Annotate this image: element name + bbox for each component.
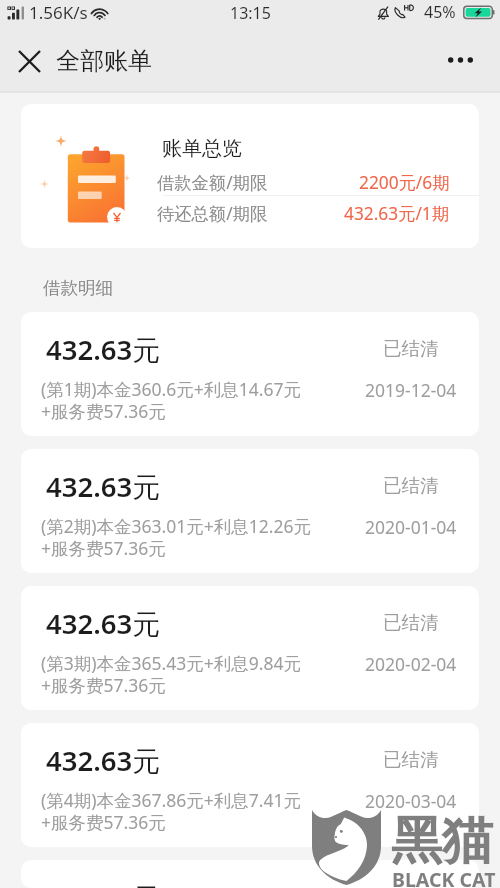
staticText: 45% [424,1,456,23]
staticText: 借款明细 [43,277,113,299]
staticText: 13:15 [230,2,271,24]
button[interactable]: 432.63元 [21,586,479,710]
staticText: 2200元/6期 [359,171,450,195]
staticText: 432.63元 [46,879,160,888]
staticText: 2020-02-04 [365,652,457,676]
staticText: 2020-03-04 [365,789,457,813]
button[interactable]: 432.63元 [21,860,479,888]
staticText: 待还总额/期限 [157,202,268,226]
staticText: 432.63元/1期 [344,202,450,226]
staticText: 432.63元 [46,331,160,369]
button[interactable]: 账单总览 [21,104,479,248]
button[interactable]: 432.63元 [21,312,479,436]
staticText: 已结清 [383,748,439,771]
staticText: 432.63元 [46,468,160,506]
staticText: 2019-12-04 [365,378,457,402]
staticText: BLACK CAT [392,866,496,888]
staticText: 2020-01-04 [365,515,457,539]
staticText: 借款金额/期限 [157,171,268,195]
button[interactable]: 432.63元 [21,449,479,573]
staticText: (第4期)本金367.86元+利息7.41元 +服务费57.36元 [41,788,301,834]
staticText: 已结清 [383,885,439,888]
staticText: (第2期)本金363.01元+利息12.26元 +服务费57.36元 [41,514,311,560]
staticText: (第3期)本金365.43元+利息9.84元 +服务费57.36元 [41,651,301,697]
staticText: 432.63元 [46,742,160,780]
staticText: 账单总览 [162,136,242,161]
button[interactable]: Close [6,38,52,84]
staticText: (第1期)本金360.6元+利息14.67元 +服务费57.36元 [41,377,301,423]
staticText: 已结清 [383,474,439,497]
staticText: 432.63元 [46,605,160,643]
staticText: 黑猫 [391,809,493,873]
staticText: 全部账单 [56,46,152,76]
button[interactable]: 432.63元 [21,723,479,847]
staticText: 已结清 [383,611,439,634]
staticText: 1.56K/s [29,1,88,24]
button[interactable]: More options [437,37,483,83]
staticText: 已结清 [383,337,439,360]
